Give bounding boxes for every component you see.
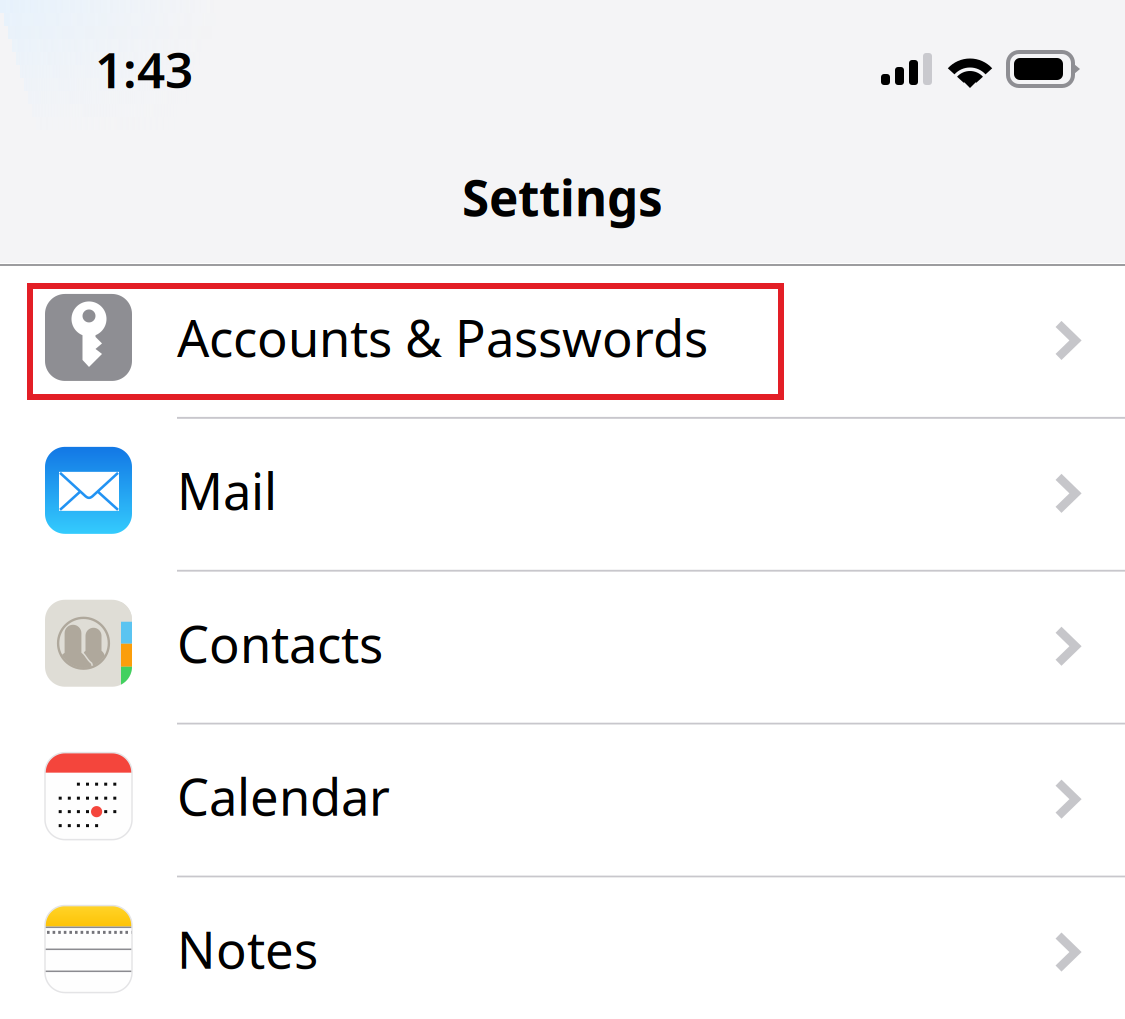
button[interactable]: Mail: [0, 419, 1125, 572]
button[interactable]: Accounts & Passwords: [0, 266, 1125, 419]
button[interactable]: Notes: [0, 878, 1125, 1019]
button[interactable]: Contacts: [0, 572, 1125, 725]
staticText: Accounts & Passwords: [177, 304, 708, 371]
staticText: Mail: [177, 457, 277, 524]
staticText: Contacts: [177, 610, 383, 677]
staticText: 1:43: [95, 36, 193, 102]
staticText: Calendar: [177, 762, 390, 830]
staticText: Notes: [177, 915, 318, 983]
staticText: Settings: [462, 164, 663, 230]
button[interactable]: Calendar: [0, 725, 1125, 878]
